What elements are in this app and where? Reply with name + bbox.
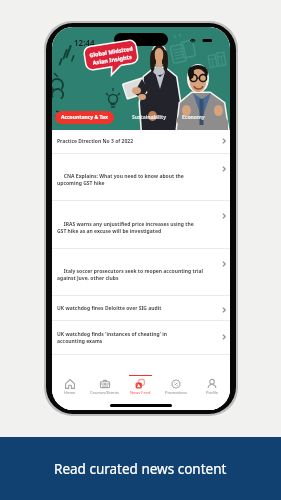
button[interactable]: Italy soccer prosecutors seek to reopen … bbox=[52, 249, 230, 296]
staticText: CNA Explains: What you need to know abou… bbox=[57, 173, 221, 187]
staticText: UK watchdog finds 'instances of cheating… bbox=[57, 331, 221, 345]
button[interactable]: Courses/Events bbox=[87, 374, 122, 400]
button[interactable]: UK watchdog finds 'instances of cheating… bbox=[52, 321, 230, 355]
button[interactable]: Home bbox=[52, 374, 87, 400]
staticText: 12:44 bbox=[74, 37, 95, 48]
button[interactable]: Practice Direction No 3 of 2022 bbox=[52, 130, 230, 154]
staticText: Economy bbox=[182, 114, 205, 121]
button[interactable]: UK watchdog fines Deloitte over SIG audi… bbox=[52, 296, 230, 321]
staticText: Practice Direction No 3 of 2022 bbox=[57, 138, 221, 145]
button[interactable]: Accountancy & Tax bbox=[55, 111, 114, 124]
button[interactable]: Economy bbox=[178, 111, 209, 124]
staticText: Promotions bbox=[165, 390, 187, 395]
staticText: Global Midsized Asian Insights bbox=[89, 45, 134, 66]
button[interactable]: IRAS warns any unjustified price increas… bbox=[52, 201, 230, 249]
button[interactable]: CNA Explains: What you need to know abou… bbox=[52, 154, 230, 201]
staticText: IRAS warns any unjustified price increas… bbox=[57, 221, 221, 235]
staticText: News Feed bbox=[130, 390, 151, 395]
button[interactable]: Promotions bbox=[158, 374, 194, 400]
staticText: Profile bbox=[206, 390, 219, 395]
staticText: Home bbox=[64, 390, 76, 395]
staticText: Read curated news content bbox=[54, 460, 227, 478]
staticText: Courses/Events bbox=[90, 390, 119, 395]
button[interactable]: Sustainability bbox=[128, 111, 171, 124]
staticText: UK watchdog fines Deloitte over SIG audi… bbox=[57, 305, 221, 312]
staticText: Italy soccer prosecutors seek to reopen … bbox=[57, 268, 221, 282]
button[interactable]: News Feed bbox=[122, 374, 158, 400]
staticText: Accountancy & Tax bbox=[61, 114, 108, 121]
button[interactable]: Profile bbox=[194, 374, 230, 400]
staticText: Sustainability bbox=[132, 114, 167, 121]
